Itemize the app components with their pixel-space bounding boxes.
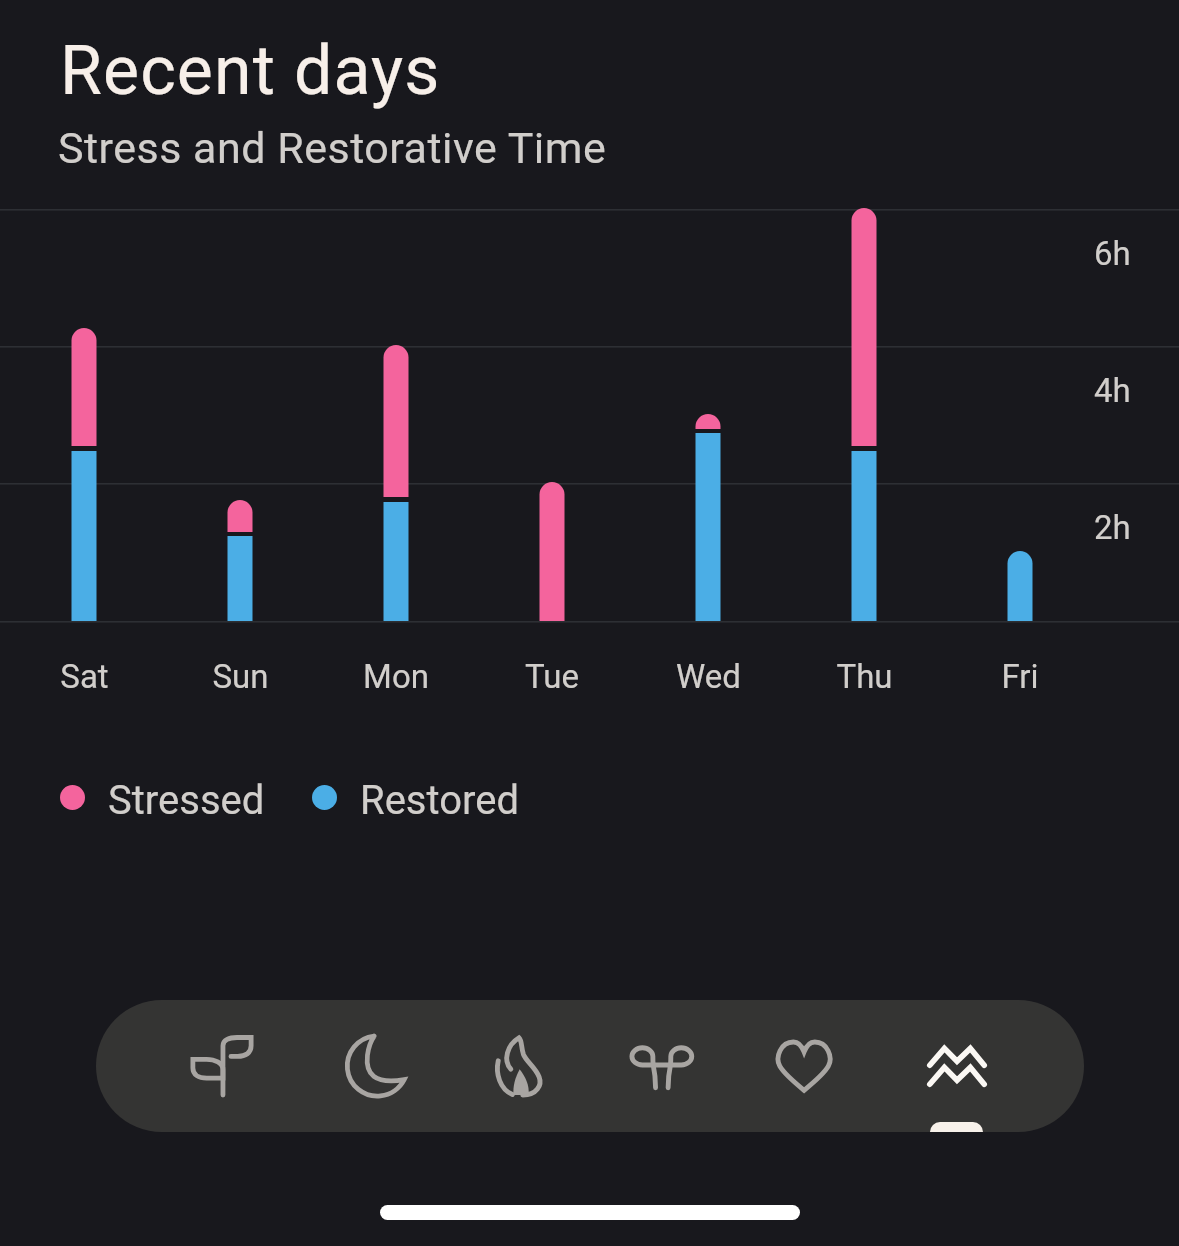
button[interactable]: Activity bbox=[424, 1000, 589, 1132]
staticText: Tue bbox=[525, 657, 579, 696]
staticText: Restored bbox=[360, 777, 519, 817]
staticText: 4h bbox=[1094, 371, 1131, 410]
staticText: Sun bbox=[212, 657, 269, 696]
staticText: Thu bbox=[836, 657, 893, 696]
button[interactable]: Restored bbox=[304, 777, 463, 817]
staticText: Fri bbox=[1001, 657, 1039, 696]
staticText: Recent days bbox=[60, 31, 441, 111]
button[interactable]: Sleep bbox=[260, 1000, 424, 1132]
staticText: Mon bbox=[363, 657, 429, 696]
button[interactable]: Readiness bbox=[96, 1000, 260, 1132]
button[interactable]: Heart health bbox=[754, 1000, 919, 1132]
staticText: Wed bbox=[676, 657, 741, 696]
staticText: Sat bbox=[60, 657, 109, 696]
staticText: 2h bbox=[1094, 508, 1131, 547]
button[interactable]: Stressed bbox=[52, 777, 209, 817]
button[interactable]: Stress bbox=[919, 1000, 1084, 1132]
button[interactable]: Cycle insights bbox=[589, 1000, 754, 1132]
staticText: Stress and Restorative Time bbox=[58, 123, 607, 173]
staticText: Stressed bbox=[108, 777, 265, 817]
staticText: 6h bbox=[1094, 234, 1131, 273]
